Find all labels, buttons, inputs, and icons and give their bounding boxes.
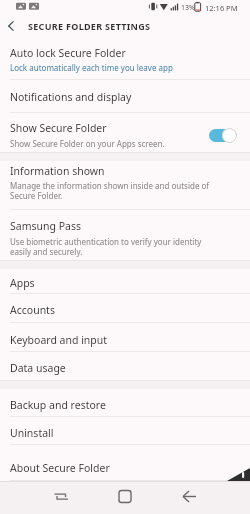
staticText: Information shown <box>10 164 105 178</box>
staticText: Keyboard and input <box>10 333 108 347</box>
button[interactable]: Accounts <box>0 294 250 323</box>
staticText: Samsung Pass <box>10 219 81 233</box>
button[interactable]: Apps <box>0 269 250 294</box>
button[interactable]: Notifications and display <box>0 80 250 113</box>
staticText: Lock automatically each time you leave a… <box>10 62 173 73</box>
button[interactable] <box>0 13 20 39</box>
staticText: 12:16 PM <box>205 3 238 13</box>
staticText: Auto lock Secure Folder <box>10 46 126 60</box>
button[interactable]: Data usage <box>0 352 250 380</box>
staticText: Manage the information shown inside and … <box>10 180 210 191</box>
staticText: Uninstall <box>10 426 54 440</box>
staticText: Backup and restore <box>10 398 106 412</box>
button[interactable] <box>48 481 76 514</box>
button[interactable]: Backup and restore <box>0 389 250 417</box>
button[interactable]: Keyboard and input <box>0 323 250 352</box>
staticText: Show Secure Folder on your Apps screen. <box>10 138 165 149</box>
staticText: Use biometric authentication to verify y… <box>10 236 202 247</box>
staticText: 13% <box>181 3 195 13</box>
button[interactable] <box>175 481 203 514</box>
button[interactable]: Samsung Pass <box>0 210 250 260</box>
staticText: About Secure Folder <box>10 461 110 475</box>
staticText: Secure Folder. <box>10 190 63 201</box>
button[interactable] <box>111 481 139 514</box>
button[interactable]: Show Secure Folder <box>0 113 250 152</box>
staticText: Notifications and display <box>10 90 132 104</box>
staticText: SECURE FOLDER SETTINGS <box>28 20 151 32</box>
button[interactable]: Uninstall <box>0 417 250 445</box>
staticText: Apps <box>10 276 35 290</box>
button[interactable] <box>207 127 237 143</box>
button[interactable]: Auto lock Secure Folder <box>0 39 250 80</box>
staticText: easily and securely. <box>10 246 83 257</box>
button[interactable]: About Secure Folder <box>0 445 250 481</box>
staticText: Accounts <box>10 303 55 317</box>
staticText: Show Secure Folder <box>10 121 107 135</box>
staticText: Data usage <box>10 361 66 375</box>
button[interactable]: Information shown <box>0 161 250 210</box>
